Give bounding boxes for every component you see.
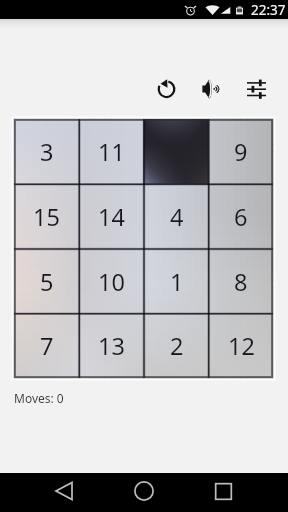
staticText: 7 <box>40 330 54 362</box>
button[interactable]: 10 <box>79 249 144 314</box>
button[interactable]: Restart <box>148 70 184 106</box>
staticText: 2 <box>170 330 184 362</box>
button[interactable]: Recents <box>199 473 247 509</box>
staticText: 1 <box>170 266 184 298</box>
button[interactable]: 12 <box>209 314 273 378</box>
button[interactable]: 15 <box>14 184 79 249</box>
button[interactable] <box>144 119 209 184</box>
staticText: Moves: 0 <box>14 390 64 406</box>
button[interactable]: Settings <box>238 70 274 106</box>
button[interactable]: 3 <box>14 119 79 184</box>
button[interactable]: 14 <box>79 184 144 249</box>
staticText: 5 <box>40 266 54 298</box>
button[interactable]: 6 <box>209 184 273 249</box>
staticText: 4 <box>170 201 184 233</box>
button[interactable]: Home <box>120 473 168 509</box>
staticText: 14 <box>98 201 125 233</box>
button[interactable]: 9 <box>209 119 273 184</box>
staticText: 3 <box>40 136 54 168</box>
staticText: 8 <box>234 266 248 298</box>
button[interactable]: 13 <box>79 314 144 378</box>
staticText: 13 <box>98 330 125 362</box>
staticText: 22:37 <box>251 1 286 19</box>
button[interactable]: Sound <box>193 70 229 106</box>
button[interactable]: 5 <box>14 249 79 314</box>
staticText: 6 <box>234 201 248 233</box>
button[interactable]: 7 <box>14 314 79 378</box>
button[interactable]: 8 <box>209 249 273 314</box>
staticText: 12 <box>228 330 255 362</box>
staticText: 15 <box>33 201 60 233</box>
button[interactable]: Back <box>40 473 88 509</box>
button[interactable]: 1 <box>144 249 209 314</box>
button[interactable]: 4 <box>144 184 209 249</box>
staticText: 10 <box>98 266 125 298</box>
button[interactable]: 11 <box>79 119 144 184</box>
staticText: 11 <box>98 136 125 168</box>
staticText: 9 <box>234 136 248 168</box>
button[interactable]: 2 <box>144 314 209 378</box>
